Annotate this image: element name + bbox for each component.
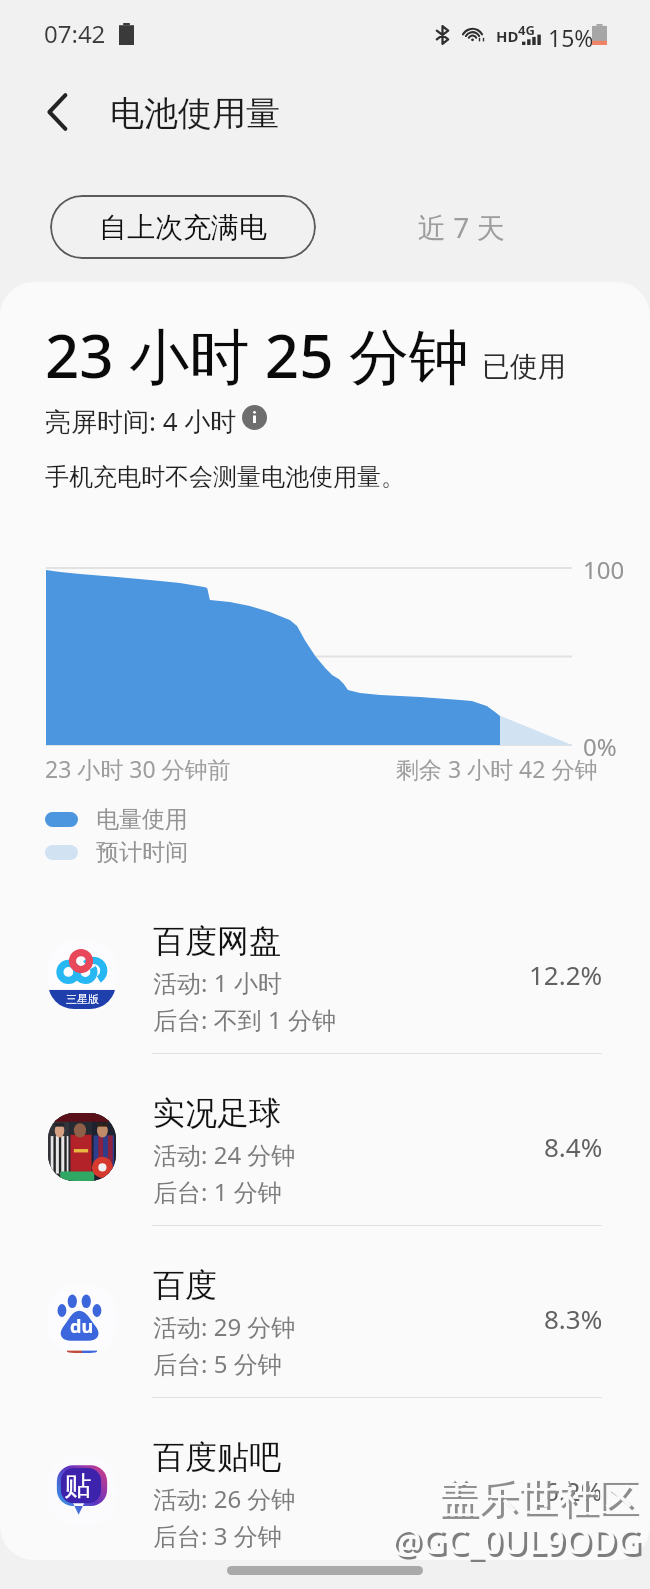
staticText: 盖乐世社区: [438, 1472, 638, 1522]
button[interactable]: 实况足球: [0, 1054, 650, 1225]
staticText: 电池使用量: [110, 92, 280, 135]
staticText: 实况足球: [153, 1093, 281, 1133]
staticText: 三星版: [66, 992, 99, 1006]
staticText: 已使用: [482, 349, 566, 384]
button[interactable]: 三星版: [0, 882, 650, 1053]
staticText: 活动: 29 分钟: [153, 1310, 296, 1343]
staticText: 4G: [518, 21, 535, 39]
staticText: 23 小时 30 分钟前: [45, 753, 231, 784]
staticText: 亮屏时间: 4 小时: [45, 403, 237, 439]
staticText: 100: [583, 553, 625, 586]
staticText: 6.2%: [544, 1473, 603, 1508]
staticText: @GC_0UL9ODG: [391, 1518, 642, 1564]
staticText: 预计时间: [96, 838, 188, 867]
staticText: 盖乐世社区: [441, 1475, 641, 1525]
button[interactable]: Info: [241, 404, 267, 430]
staticText: 23 小时 25 分钟: [45, 314, 470, 396]
button[interactable]: 近 7 天: [418, 195, 548, 259]
staticText: 手机充电时不会测量电池使用量。: [45, 462, 405, 492]
staticText: @GC_0UL9ODG: [394, 1521, 645, 1567]
staticText: 12.2%: [529, 957, 603, 992]
staticText: 电量使用: [96, 805, 188, 834]
staticText: 剩余 3 小时 42 分钟: [396, 753, 598, 784]
staticText: 8.3%: [544, 1301, 603, 1336]
button[interactable]: du: [0, 1226, 650, 1397]
button[interactable]: Back: [30, 83, 88, 141]
staticText: du: [70, 1314, 94, 1339]
staticText: 近 7 天: [418, 208, 505, 246]
staticText: 活动: 24 分钟: [153, 1138, 296, 1171]
staticText: 0%: [583, 730, 617, 763]
button[interactable]: 自上次充满电: [50, 195, 316, 259]
staticText: 百度贴吧: [153, 1437, 281, 1477]
staticText: 自上次充满电: [99, 210, 267, 245]
staticText: 07:42: [44, 17, 106, 50]
staticText: 百度网盘: [153, 921, 281, 961]
staticText: 后台: 1 分钟: [153, 1175, 282, 1208]
staticText: HD: [496, 26, 519, 46]
staticText: 15%: [548, 22, 594, 53]
staticText: 8.4%: [544, 1129, 603, 1164]
staticText: 后台: 不到 1 分钟: [153, 1003, 336, 1036]
staticText: 贴: [64, 1469, 91, 1503]
staticText: 活动: 1 小时: [153, 966, 282, 999]
staticText: 百度: [153, 1265, 217, 1305]
button[interactable]: 贴: [0, 1398, 650, 1560]
staticText: 活动: 26 分钟: [153, 1482, 296, 1515]
staticText: 后台: 3 分钟: [153, 1519, 282, 1552]
staticText: 后台: 5 分钟: [153, 1347, 282, 1380]
